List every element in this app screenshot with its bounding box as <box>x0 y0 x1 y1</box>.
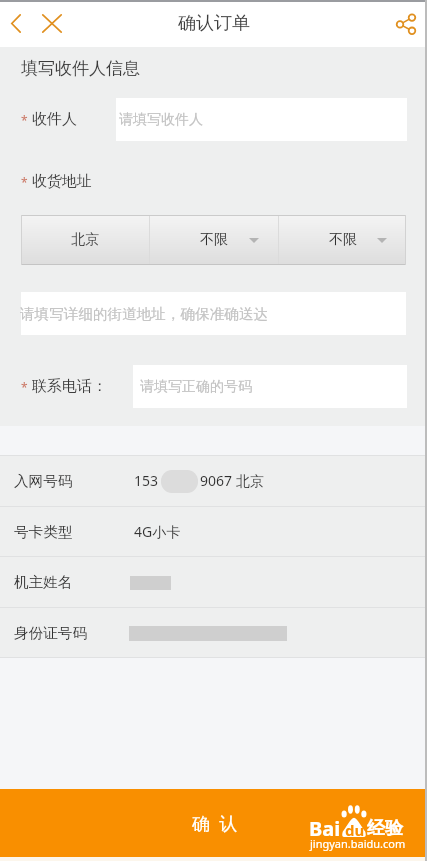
button[interactable]: 不限 <box>150 215 278 265</box>
staticText: 入网号码 <box>14 472 73 490</box>
staticText: 9067 北京 <box>200 471 264 490</box>
staticText: 填写收件人信息 <box>21 58 140 79</box>
staticText: Bai <box>309 815 341 842</box>
button[interactable]: 入网号码 <box>0 455 427 506</box>
staticText: 机主姓名 <box>14 573 73 591</box>
button[interactable]: 请填写收件人 <box>116 98 407 141</box>
button[interactable]: 北京 <box>21 215 149 265</box>
button[interactable]: 号卡类型 <box>0 506 427 557</box>
staticText: 北京 <box>71 231 99 249</box>
staticText: 不限 <box>329 231 357 249</box>
staticText: 号卡类型 <box>14 523 73 541</box>
staticText: 确认订单 <box>178 12 250 35</box>
button[interactable]: 请填写正确的号码 <box>133 365 407 408</box>
button[interactable]: Share <box>389 2 422 45</box>
staticText: 4G小卡 <box>134 522 181 541</box>
staticText: 确 认 <box>192 811 238 836</box>
staticText: 收货地址 <box>32 172 92 191</box>
button[interactable]: 身份证号码 <box>0 607 427 658</box>
staticText: 153 <box>134 471 159 490</box>
staticText: * <box>21 379 28 395</box>
staticText: 收件人 <box>32 110 77 129</box>
staticText: 请填写正确的号码 <box>140 378 252 396</box>
staticText: * <box>21 112 28 128</box>
button[interactable]: 机主姓名 <box>0 556 427 607</box>
staticText: 请填写收件人 <box>119 111 203 129</box>
staticText: 身份证号码 <box>14 624 87 642</box>
button[interactable]: 请填写详细的街道地址，确保准确送达 <box>21 292 406 335</box>
staticText: 请填写详细的街道地址，确保准确送达 <box>20 305 269 323</box>
button[interactable]: Close <box>36 2 68 45</box>
staticText: 联系电话： <box>32 377 107 396</box>
staticText: 经验 <box>367 817 403 840</box>
button[interactable]: 不限 <box>279 215 406 265</box>
staticText: du <box>345 820 365 840</box>
staticText: * <box>21 174 28 190</box>
button[interactable]: Back <box>0 2 31 45</box>
staticText: jingyan.baidu.com <box>310 836 406 851</box>
staticText: 不限 <box>200 231 228 249</box>
button[interactable]: 确 认 <box>0 789 427 857</box>
